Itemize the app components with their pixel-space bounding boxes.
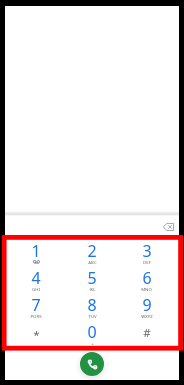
staticText: 6: [142, 267, 152, 289]
staticText: 9: [142, 294, 152, 316]
staticText: MNO: [141, 286, 152, 291]
button[interactable]: 0: [64, 323, 119, 350]
staticText: 2: [87, 240, 97, 262]
staticText: WXYZ: [141, 313, 153, 318]
staticText: +: [91, 340, 94, 345]
button[interactable]: 6: [119, 269, 174, 296]
staticText: 7: [31, 294, 41, 316]
button[interactable]: 7: [8, 296, 64, 323]
button[interactable]: 2: [64, 242, 119, 269]
button[interactable]: 8: [64, 296, 119, 323]
button[interactable]: 5: [64, 269, 119, 296]
button[interactable]: Backspace: [157, 216, 179, 238]
staticText: TUV: [88, 313, 97, 318]
button[interactable]: 4: [8, 269, 64, 296]
staticText: PQRS: [30, 313, 42, 318]
staticText: JKL: [89, 286, 96, 291]
button[interactable]: #: [119, 323, 174, 350]
staticText: 5: [87, 267, 97, 289]
button[interactable]: *: [8, 323, 64, 350]
staticText: 3: [142, 240, 152, 262]
staticText: 4: [31, 267, 41, 289]
staticText: 1: [31, 240, 41, 262]
staticText: 8: [87, 294, 97, 316]
button[interactable]: 1: [8, 242, 64, 269]
staticText: #: [143, 325, 151, 341]
button[interactable]: 3: [119, 242, 174, 269]
staticText: 0: [87, 321, 97, 343]
staticText: DEF: [143, 259, 151, 264]
staticText: GHI: [32, 286, 40, 291]
staticText: *: [33, 327, 40, 343]
button[interactable]: 9: [119, 296, 174, 323]
button[interactable]: Call: [80, 352, 104, 376]
staticText: ABC: [88, 259, 97, 264]
